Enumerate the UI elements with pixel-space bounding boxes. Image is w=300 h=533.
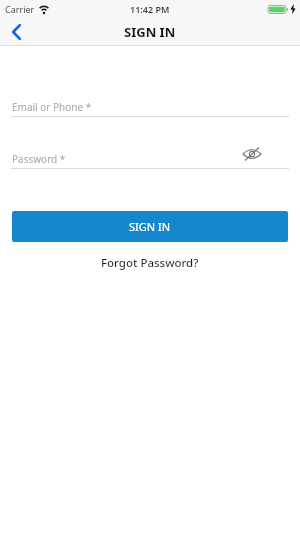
button[interactable]: [242, 147, 262, 161]
staticText: Email or Phone *: [12, 100, 92, 114]
staticText: SIGN IN: [124, 23, 176, 41]
staticText: Carrier: [5, 3, 35, 15]
staticText: Password *: [12, 152, 66, 166]
button[interactable]: SIGN IN: [12, 211, 288, 242]
staticText: 11:42 PM: [130, 3, 170, 15]
button[interactable]: [6, 20, 26, 44]
staticText: SIGN IN: [129, 219, 171, 234]
button[interactable]: Forgot Password?: [101, 255, 199, 271]
